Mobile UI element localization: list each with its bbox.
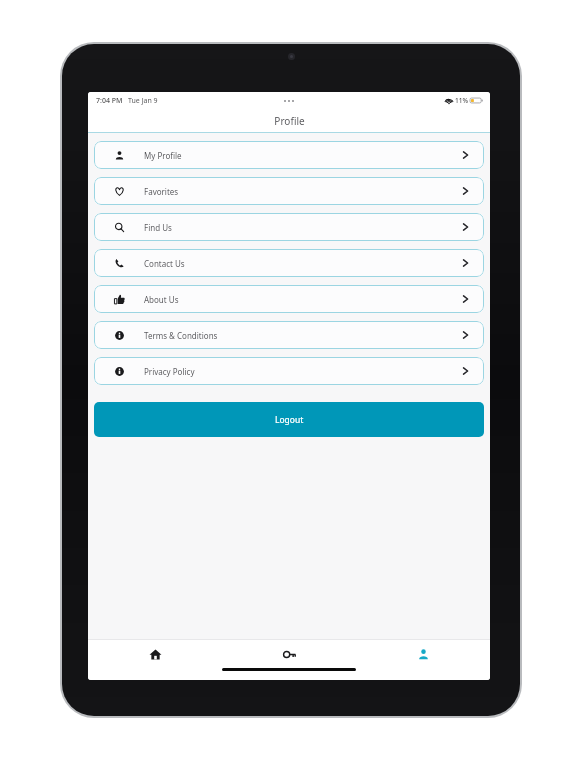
button[interactable]: My Profile xyxy=(94,141,484,169)
button[interactable]: Logout xyxy=(94,402,484,437)
staticText: 7:04 PM xyxy=(96,96,123,106)
staticText: Find Us xyxy=(144,222,172,233)
staticText: Favorites xyxy=(144,186,179,197)
button[interactable]: Home xyxy=(88,640,222,668)
staticText: Tue Jan 9 xyxy=(128,96,158,106)
staticText: Contact Us xyxy=(144,258,185,269)
staticText: Profile xyxy=(274,114,305,128)
staticText: About Us xyxy=(144,294,179,305)
staticText: Privacy Policy xyxy=(144,366,195,377)
button[interactable]: Contact Us xyxy=(94,249,484,277)
button[interactable]: Privacy Policy xyxy=(94,357,484,385)
staticText: Logout xyxy=(275,414,304,426)
button[interactable]: Terms & Conditions xyxy=(94,321,484,349)
staticText: 11% xyxy=(455,96,468,105)
button[interactable]: Favorites xyxy=(94,177,484,205)
button[interactable]: Profile xyxy=(356,640,490,668)
button[interactable]: Key xyxy=(222,640,356,668)
button[interactable]: Find Us xyxy=(94,213,484,241)
staticText: Terms & Conditions xyxy=(144,330,218,341)
staticText: My Profile xyxy=(144,150,182,161)
button[interactable]: About Us xyxy=(94,285,484,313)
